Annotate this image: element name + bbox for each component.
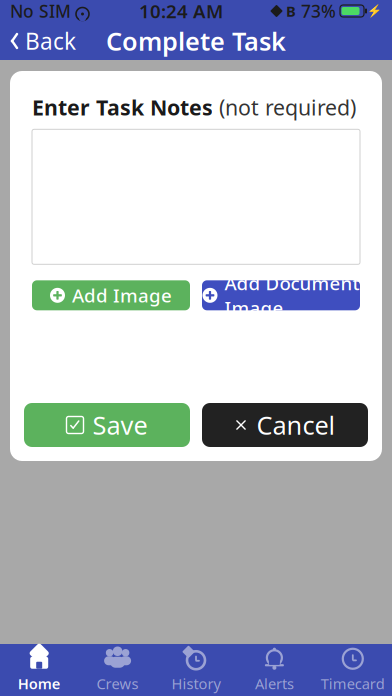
button[interactable]: History (157, 644, 235, 696)
staticText: Complete Task (106, 24, 286, 58)
staticText: No SIM (10, 0, 71, 22)
staticText: ⚡ (367, 4, 382, 18)
button[interactable]: Cancel (202, 403, 368, 447)
staticText: Crews (97, 674, 139, 693)
button[interactable]: Add Document Image (202, 280, 360, 310)
staticText: Add Image (72, 283, 172, 308)
staticText: 10:24 AM (139, 0, 223, 23)
button[interactable]: Home (0, 644, 78, 696)
staticText: (not required) (213, 93, 356, 121)
staticText: Back (25, 26, 76, 56)
button[interactable]: Save (24, 403, 190, 447)
staticText: Add Document Image (224, 270, 359, 320)
staticText: History (171, 674, 220, 693)
button[interactable]: Back (0, 22, 76, 60)
staticText: Save (92, 408, 147, 442)
button[interactable]: Timecard (314, 644, 392, 696)
staticText: Home (18, 674, 61, 693)
staticText: Cancel (256, 408, 335, 442)
staticText: 73% (301, 0, 336, 22)
button[interactable]: Add Image (32, 280, 190, 310)
staticText: Enter Task Notes (32, 93, 213, 121)
button[interactable]: Crews (78, 644, 157, 696)
staticText: Alerts (255, 674, 294, 693)
button[interactable]: Alerts (235, 644, 314, 696)
staticText: B (286, 1, 296, 21)
staticText: Timecard (321, 674, 385, 693)
